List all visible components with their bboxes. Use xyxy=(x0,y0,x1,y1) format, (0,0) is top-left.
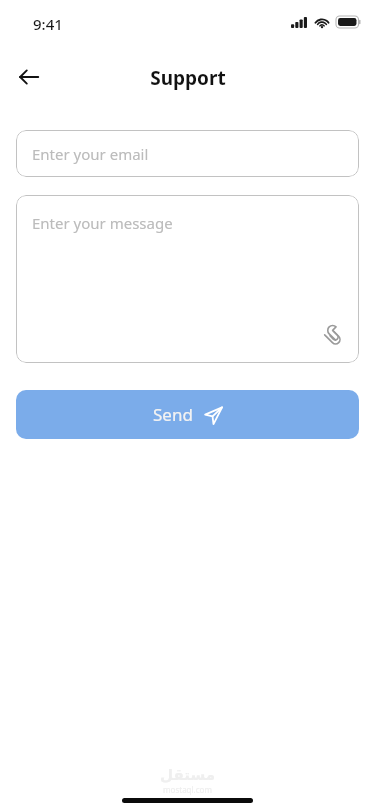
staticText: Send xyxy=(153,403,193,426)
staticText: Support xyxy=(150,65,226,91)
staticText: Enter your email xyxy=(32,144,149,164)
button[interactable]: Send xyxy=(16,390,359,439)
button[interactable]: Back xyxy=(10,58,48,96)
staticText: mostaql.com xyxy=(163,784,212,795)
button[interactable]: Enter your email xyxy=(16,130,359,177)
staticText: 9:41 xyxy=(33,14,63,34)
button[interactable]: Enter your message xyxy=(16,195,359,363)
staticText: مستقل xyxy=(160,766,215,783)
button[interactable]: Attach file xyxy=(321,325,347,351)
staticText: Enter your message xyxy=(32,213,173,233)
